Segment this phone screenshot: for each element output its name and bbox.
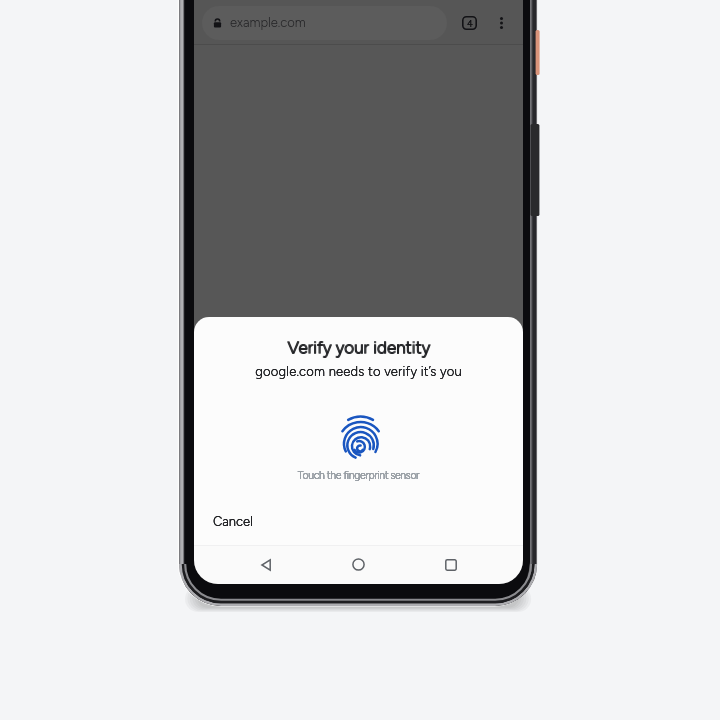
button[interactable]: More options [488,10,514,36]
staticText: Cancel [213,514,253,530]
staticText: Touch the fingerprint sensor [194,469,523,482]
staticText: Cancel [213,514,253,530]
staticText: Verify your identity [194,338,523,358]
staticText: example.com [230,15,306,31]
staticText: Cancel [213,514,253,530]
staticText: 4 [467,18,473,29]
staticText: google.com needs to verify it’s you [194,364,523,380]
staticText: Verify your identity [195,338,523,358]
staticText: Cancel [213,514,253,530]
staticText: 4 [467,18,473,29]
button[interactable]: example.com [202,6,447,40]
staticText: Touch the fingerprint sensor [194,469,523,482]
staticText: 4 [467,18,473,29]
button[interactable]: Cancel [202,507,264,537]
staticText: Touch the fingerprint sensor [194,469,523,482]
staticText: google.com needs to verify it’s you [194,364,523,380]
button[interactable]: Switch tabs, 4 open [456,10,482,36]
staticText: Verify your identity [195,337,523,357]
staticText: google.com needs to verify it’s you [194,364,523,380]
button[interactable]: Home [336,545,380,584]
button[interactable]: Back [244,545,288,584]
staticText: google.com needs to verify it’s you [194,364,523,380]
staticText: 4 [467,18,473,29]
staticText: Verify your identity [194,337,523,357]
staticText: Touch the fingerprint sensor [194,469,523,482]
button[interactable]: Recent apps [429,545,473,584]
